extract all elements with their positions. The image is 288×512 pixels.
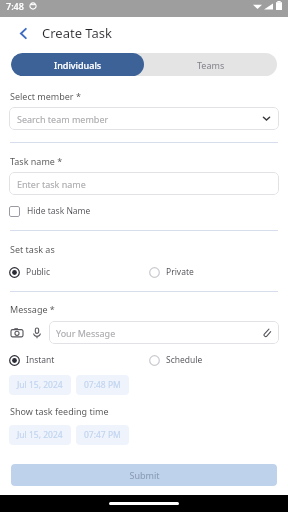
- staticText: Your Message: [56, 327, 116, 339]
- button[interactable]: 07:48 PM: [76, 375, 129, 395]
- staticText: 07:48 PM: [84, 379, 121, 391]
- button[interactable]: Teams: [144, 53, 277, 76]
- button[interactable]: Hide task Name: [9, 204, 91, 218]
- button[interactable]: Public: [9, 264, 149, 280]
- staticText: Show task feeding time: [10, 405, 109, 417]
- staticText: Create Task: [42, 24, 113, 42]
- staticText: Search team member: [17, 113, 109, 125]
- button[interactable]: Jul 15, 2024: [9, 375, 71, 395]
- staticText: Public: [26, 266, 51, 278]
- staticText: Hide task Name: [27, 205, 91, 217]
- button[interactable]: Instant: [9, 352, 149, 368]
- staticText: Task name *: [10, 155, 63, 167]
- button[interactable]: Voice message: [28, 324, 45, 341]
- button[interactable]: Enter task name: [9, 172, 279, 195]
- button[interactable]: Camera: [8, 324, 25, 341]
- staticText: Submit: [129, 469, 160, 481]
- button[interactable]: Your Message: [49, 321, 279, 344]
- staticText: Jul 15, 2024: [17, 379, 63, 391]
- button[interactable]: Individuals: [11, 53, 144, 76]
- staticText: Schedule: [166, 354, 203, 366]
- staticText: Teams: [197, 59, 225, 71]
- staticText: Enter task name: [17, 178, 86, 190]
- button[interactable]: Private: [149, 264, 194, 280]
- button[interactable]: Jul 15, 2024: [9, 425, 71, 445]
- button[interactable]: Back: [12, 22, 34, 44]
- staticText: Select member *: [10, 90, 81, 102]
- staticText: Instant: [26, 354, 55, 366]
- button[interactable]: 07:47 PM: [76, 425, 129, 445]
- staticText: 07:47 PM: [84, 429, 121, 441]
- button[interactable]: Search team member: [9, 107, 279, 130]
- staticText: Jul 15, 2024: [17, 429, 63, 441]
- staticText: Message *: [10, 303, 55, 315]
- staticText: 7:48: [6, 0, 24, 12]
- button[interactable]: Submit: [11, 464, 277, 486]
- staticText: Private: [166, 266, 194, 278]
- staticText: Set task as: [10, 243, 55, 255]
- staticText: Individuals: [54, 59, 102, 71]
- button[interactable]: Schedule: [149, 352, 203, 368]
